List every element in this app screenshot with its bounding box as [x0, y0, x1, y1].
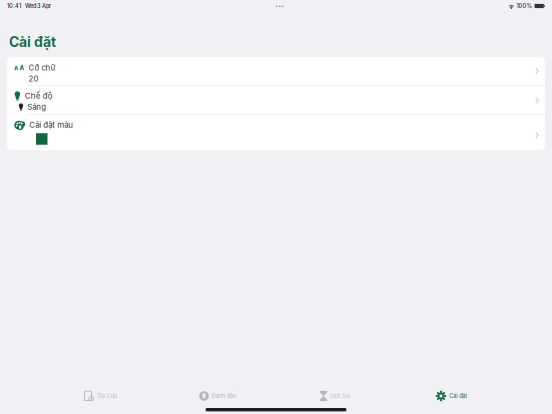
button[interactable]: Cài đặt màu	[7, 115, 545, 150]
staticText: 10:41	[7, 3, 21, 9]
staticText: Cỡ chữ	[29, 63, 56, 72]
staticText: 100%	[517, 3, 533, 9]
staticText: Wed 3 Apr	[25, 3, 51, 9]
staticText: Sáng	[27, 102, 46, 112]
button[interactable]: Chế độ	[7, 86, 545, 115]
staticText: Lịch Sử	[330, 393, 349, 399]
staticText: 20	[28, 74, 38, 83]
staticText: Chế độ	[25, 91, 53, 101]
staticText: •••	[275, 2, 284, 10]
button[interactable]: Cài đặt	[393, 386, 510, 406]
button[interactable]: Lịch Sử	[276, 386, 393, 406]
button[interactable]: Tra Cứu	[42, 386, 159, 406]
staticText: Đánh dấu	[212, 393, 236, 399]
staticText: Cài đặt màu	[29, 120, 73, 130]
staticText: Cài đặt	[449, 393, 467, 399]
button[interactable]: Đánh dấu	[159, 386, 276, 406]
staticText: Cài đặt	[9, 33, 56, 50]
button[interactable]: Cỡ chữ	[7, 57, 545, 86]
staticText: Tra Cứu	[97, 393, 117, 399]
